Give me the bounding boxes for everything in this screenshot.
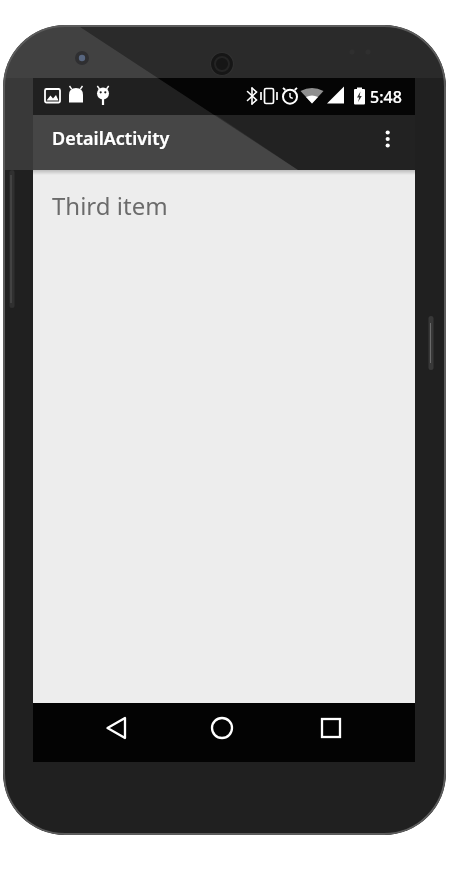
button[interactable] <box>96 708 136 748</box>
staticText: 5:48 <box>370 86 402 108</box>
staticText: DetailActivity <box>52 126 170 151</box>
staticText: Third item <box>52 189 168 222</box>
button[interactable] <box>311 708 351 748</box>
button[interactable] <box>202 708 242 748</box>
button[interactable] <box>373 126 405 159</box>
